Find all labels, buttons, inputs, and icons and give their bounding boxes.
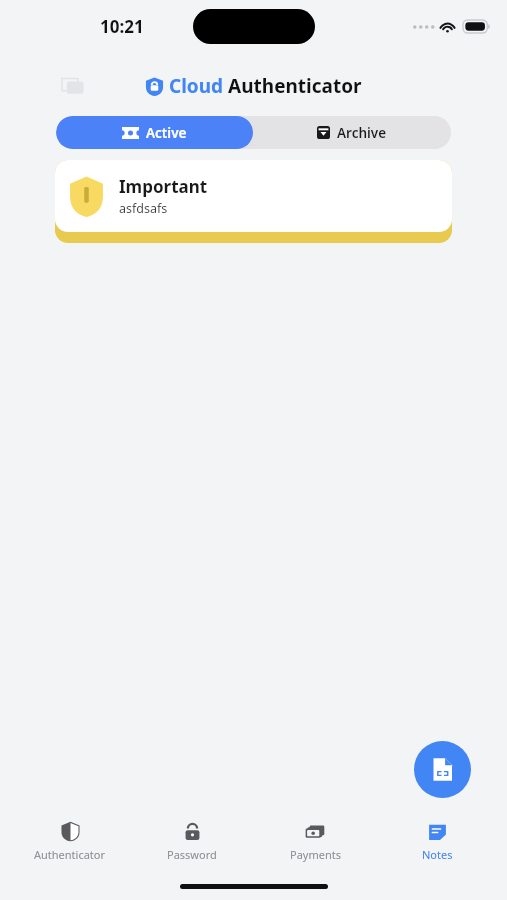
button[interactable]: Password [140, 810, 244, 872]
button[interactable]: Important [55, 160, 452, 232]
button[interactable]: Notes [385, 810, 489, 872]
button[interactable]: Payments [263, 810, 367, 872]
button[interactable]: Authenticator [18, 810, 122, 872]
staticText: 10:21 [100, 15, 144, 38]
staticText: Important [119, 175, 208, 198]
staticText: Authenticator [34, 847, 106, 862]
button[interactable]: Profile image [58, 72, 88, 100]
staticText: Payments [290, 847, 341, 862]
button[interactable]: Add note [414, 741, 471, 798]
button[interactable]: Archive [253, 116, 451, 149]
staticText: Active [146, 124, 187, 142]
staticText: Cloud Authenticator [169, 73, 362, 99]
staticText: Archive [337, 124, 387, 142]
button[interactable]: Active [56, 116, 253, 149]
staticText: Notes [422, 847, 453, 862]
staticText: Password [167, 847, 217, 862]
staticText: asfdsafs [119, 200, 168, 217]
